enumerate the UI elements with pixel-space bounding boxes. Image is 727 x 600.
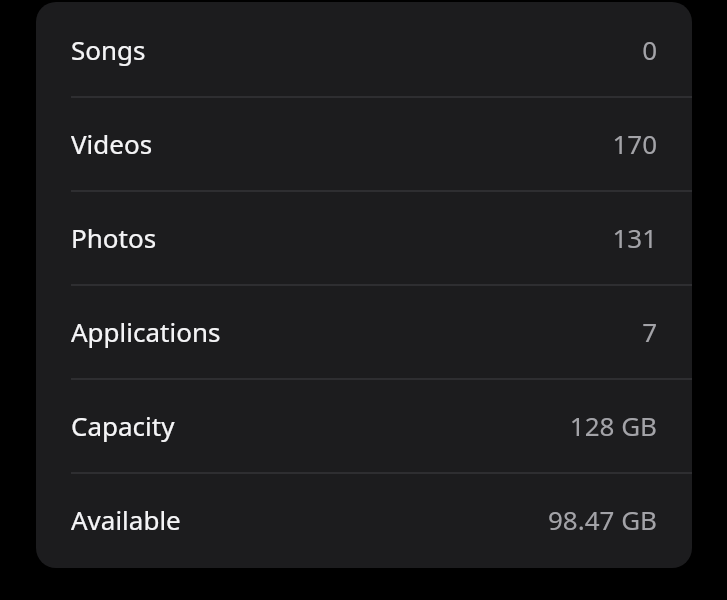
button[interactable]: Capacity xyxy=(36,378,692,472)
button[interactable]: Videos xyxy=(36,96,692,190)
staticText: Songs xyxy=(71,32,146,67)
staticText: Videos xyxy=(71,126,153,161)
staticText: 128 GB xyxy=(569,408,657,443)
staticText: Applications xyxy=(71,314,221,349)
staticText: 0 xyxy=(642,32,657,67)
button[interactable]: Songs xyxy=(36,2,692,96)
staticText: Available xyxy=(71,502,181,537)
staticText: 131 xyxy=(612,220,657,255)
staticText: 7 xyxy=(642,314,657,349)
button[interactable]: Available xyxy=(36,472,692,566)
staticText: 98.47 GB xyxy=(547,502,657,537)
button[interactable]: Photos xyxy=(36,190,692,284)
staticText: 170 xyxy=(612,126,657,161)
staticText: Capacity xyxy=(71,408,175,443)
button[interactable]: Applications xyxy=(36,284,692,378)
staticText: Photos xyxy=(71,220,157,255)
